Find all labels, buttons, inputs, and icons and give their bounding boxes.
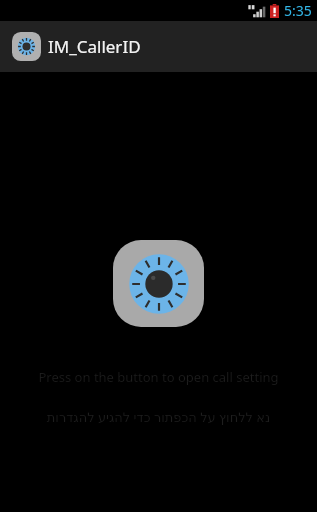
staticText: 5:35 [284,1,312,20]
staticText: Press on the button to open call setting [0,368,317,386]
staticText: נא ללחוץ על הכפתור כדי להגיע להגדרות [0,408,317,426]
staticText: IM_CallerID [48,35,141,58]
button[interactable]: Open call settings [113,240,204,327]
